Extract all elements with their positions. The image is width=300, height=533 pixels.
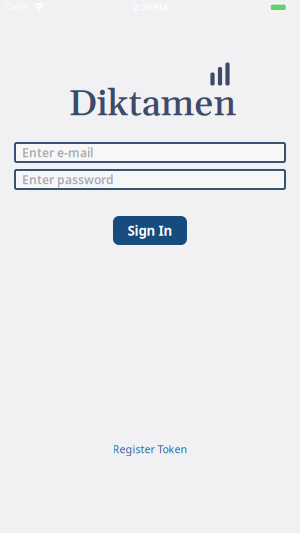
staticText: Enter e-mail [22,144,93,160]
staticText: 2:26 PM [133,1,168,13]
staticText: Diktamen [68,81,236,128]
staticText: Enter password [22,171,114,187]
button[interactable]: Sign In [113,216,187,245]
button[interactable]: Enter e-mail [15,143,285,162]
staticText: Carrier [5,2,30,12]
staticText: Sign In [127,222,172,239]
button[interactable]: Enter password [15,170,285,189]
staticText: Register Token [112,442,187,456]
button[interactable]: Register Token [112,442,187,456]
